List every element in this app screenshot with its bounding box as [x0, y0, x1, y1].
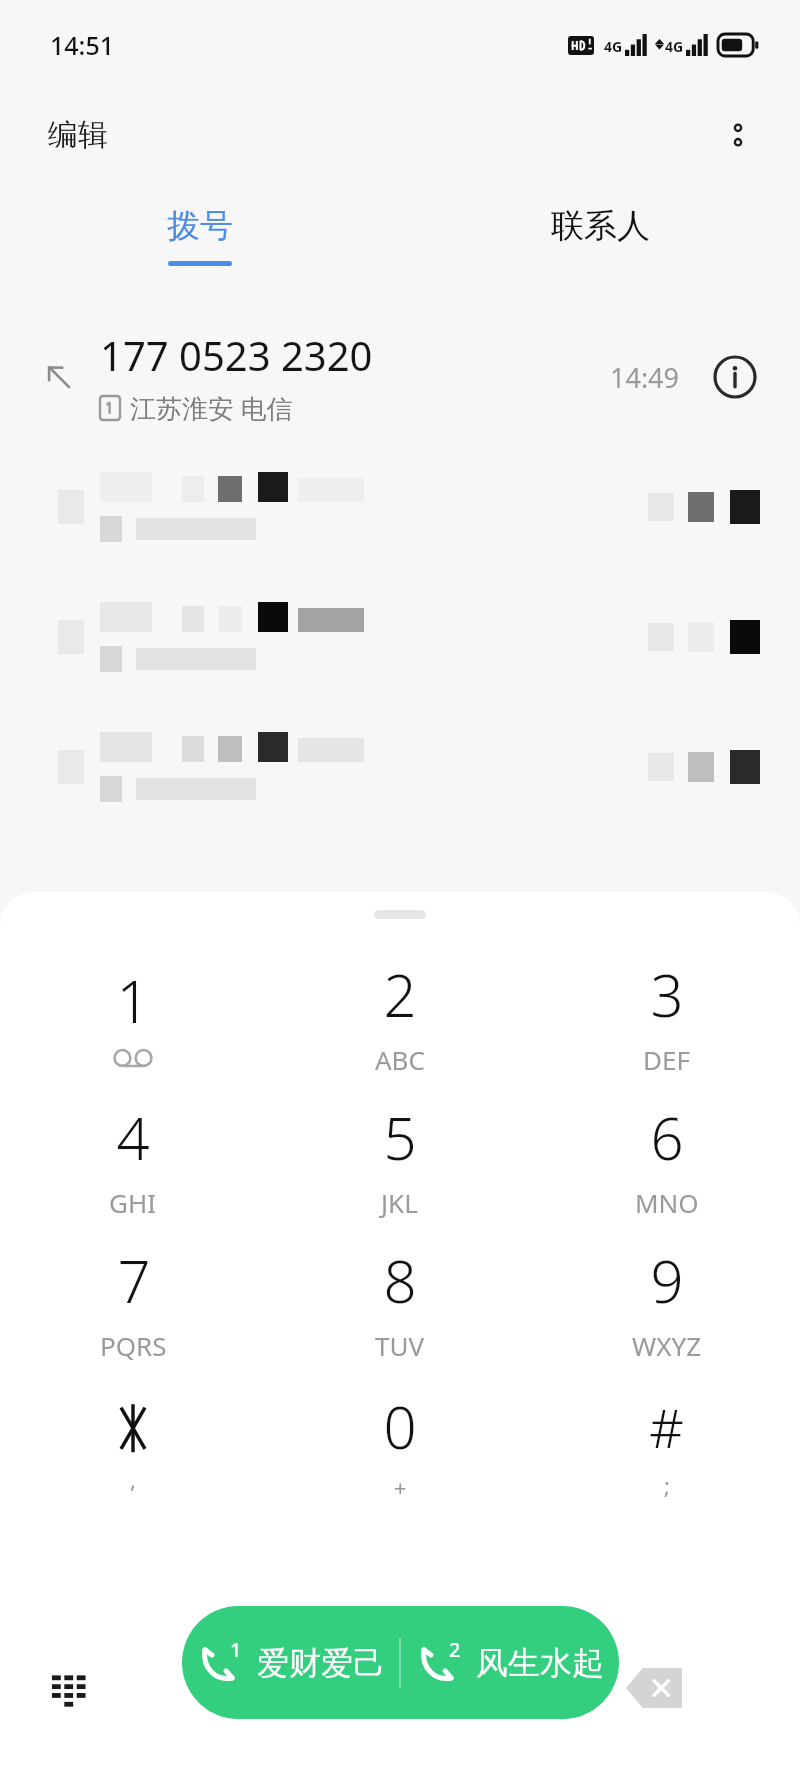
staticText: JKL: [381, 1185, 418, 1220]
button[interactable]: #: [533, 1373, 800, 1516]
staticText: ABC: [375, 1042, 425, 1077]
button[interactable]: 5: [266, 1087, 533, 1230]
staticText: 5: [383, 1098, 417, 1177]
staticText: 3: [650, 955, 684, 1034]
button[interactable]: 2: [401, 1606, 619, 1719]
button[interactable]: [0, 442, 800, 572]
staticText: TUV: [375, 1328, 425, 1363]
button[interactable]: 7: [0, 1230, 266, 1373]
button[interactable]: 3: [533, 944, 800, 1087]
button[interactable]: 177 0523 2320: [0, 312, 800, 442]
staticText: GHI: [109, 1185, 157, 1220]
button[interactable]: 1: [0, 944, 266, 1087]
staticText: 江苏淮安 电信: [130, 390, 293, 426]
staticText: 风生水起: [476, 1643, 604, 1683]
button[interactable]: 1: [182, 1606, 399, 1719]
button[interactable]: 拨号: [0, 180, 400, 290]
staticText: 4G: [604, 37, 623, 56]
staticText: ;: [664, 1470, 670, 1500]
button[interactable]: ,: [0, 1373, 266, 1516]
staticText: 1: [230, 1636, 242, 1663]
button[interactable]: 4: [0, 1087, 266, 1230]
staticText: 4: [116, 1098, 150, 1177]
button[interactable]: Call details: [704, 346, 766, 408]
staticText: #: [649, 1390, 684, 1464]
staticText: WXYZ: [632, 1328, 702, 1363]
staticText: 14:51: [50, 28, 115, 62]
staticText: 6: [650, 1098, 684, 1177]
staticText: 2: [449, 1636, 461, 1663]
staticText: MNO: [635, 1185, 699, 1220]
button[interactable]: More options: [710, 107, 766, 163]
staticText: 联系人: [551, 205, 650, 247]
staticText: 9: [650, 1241, 684, 1320]
button[interactable]: 编辑: [48, 116, 108, 154]
staticText: DEF: [643, 1042, 690, 1077]
button[interactable]: 0: [266, 1373, 533, 1516]
button[interactable]: 8: [266, 1230, 533, 1373]
staticText: 4G: [665, 37, 684, 56]
button[interactable]: [0, 572, 800, 702]
staticText: 2: [383, 955, 417, 1034]
staticText: ,: [130, 1464, 136, 1494]
button[interactable]: 6: [533, 1087, 800, 1230]
staticText: 0: [383, 1387, 417, 1466]
staticText: 177 0523 2320: [100, 328, 373, 382]
button[interactable]: Backspace: [618, 1652, 690, 1724]
button[interactable]: 联系人: [400, 180, 800, 290]
button[interactable]: 9: [533, 1230, 800, 1373]
button[interactable]: Hide keypad: [34, 1652, 106, 1724]
staticText: 8: [383, 1241, 417, 1320]
button[interactable]: [0, 702, 800, 832]
staticText: 拨号: [167, 205, 233, 247]
staticText: +: [394, 1472, 407, 1502]
staticText: 爱财爱己: [257, 1643, 385, 1683]
staticText: 14:49: [610, 359, 680, 396]
staticText: PQRS: [100, 1328, 167, 1363]
staticText: 7: [117, 1241, 151, 1320]
staticText: 1: [116, 961, 150, 1040]
button[interactable]: 2: [266, 944, 533, 1087]
